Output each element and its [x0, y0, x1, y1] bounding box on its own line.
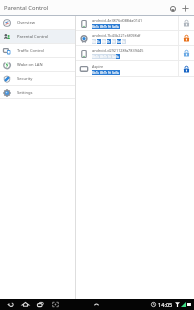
- staticText: Wed: [102, 40, 106, 44]
- staticText: Thu: [104, 71, 108, 75]
- staticText: Fri: [112, 40, 116, 44]
- staticText: Sun: [116, 71, 120, 75]
- button[interactable]: Sun: [122, 39, 126, 44]
- staticText: Thu: [104, 55, 108, 59]
- staticText: Wed: [100, 25, 104, 29]
- button[interactable]: Settings: [0, 86, 75, 99]
- button[interactable]: android-4e3876d088da0141: [76, 16, 194, 31]
- button[interactable]: Sat: [112, 70, 116, 75]
- button[interactable]: Overview: [0, 16, 75, 30]
- button[interactable]: Thu: [104, 24, 108, 29]
- staticText: Security: [17, 76, 33, 82]
- button[interactable]: Mon: [92, 39, 96, 44]
- button[interactable]: Wed: [100, 70, 104, 75]
- button[interactable]: Thu: [104, 70, 108, 75]
- button[interactable]: Expand: [89, 299, 103, 310]
- staticText: android-7b43b221c6f098df: [92, 33, 141, 38]
- staticText: Wed: [100, 71, 104, 75]
- button[interactable]: Sun: [116, 24, 120, 29]
- staticText: Mon: [92, 25, 96, 29]
- staticText: 14:05: [158, 301, 173, 309]
- button[interactable]: Aspire: [76, 61, 194, 77]
- button[interactable]: Wake on LAN: [0, 58, 75, 72]
- button[interactable]: Tue: [96, 70, 100, 75]
- staticText: Parental Control: [17, 34, 49, 40]
- staticText: Tue: [96, 55, 100, 59]
- staticText: android-4e3876d088da0141: [92, 18, 143, 23]
- button[interactable]: Fri: [108, 24, 112, 29]
- button[interactable]: Wed: [100, 24, 104, 29]
- staticText: Thu: [107, 40, 111, 44]
- staticText: Mon: [92, 55, 96, 59]
- button[interactable]: Sat: [112, 24, 116, 29]
- button[interactable]: Home: [18, 299, 32, 310]
- button[interactable]: Tue: [97, 39, 101, 44]
- button[interactable]: Sat: [117, 39, 121, 44]
- staticText: Wake on LAN: [17, 62, 43, 68]
- button[interactable]: Back: [3, 299, 17, 310]
- staticText: Tue: [96, 25, 100, 29]
- button[interactable]: Fri: [108, 54, 112, 59]
- staticText: android-d2921128fa7839445: [92, 48, 144, 53]
- staticText: Tue: [97, 40, 101, 44]
- button[interactable]: Parental Control: [0, 30, 75, 44]
- staticText: Mon: [92, 40, 96, 44]
- staticText: Thu: [104, 25, 108, 29]
- button[interactable]: Sun: [116, 54, 120, 59]
- button[interactable]: Toggle lock: [179, 31, 194, 46]
- button[interactable]: Wed: [102, 39, 106, 44]
- button[interactable]: Security: [0, 72, 75, 86]
- button[interactable]: android-7b43b221c6f098df: [76, 31, 194, 46]
- staticText: Sun: [122, 40, 126, 44]
- staticText: Sun: [116, 55, 120, 59]
- button[interactable]: Sat: [112, 54, 116, 59]
- button[interactable]: Refresh: [166, 2, 179, 15]
- button[interactable]: Fri: [112, 39, 116, 44]
- button[interactable]: Tue: [96, 24, 100, 29]
- staticText: Fri: [108, 25, 112, 29]
- button[interactable]: Wed: [100, 54, 104, 59]
- button[interactable]: Traffic Control: [0, 44, 75, 58]
- staticText: Wed: [100, 55, 104, 59]
- staticText: Fri: [108, 55, 112, 59]
- button[interactable]: Toggle lock: [179, 16, 194, 31]
- button[interactable]: Thu: [104, 54, 108, 59]
- button[interactable]: android-d2921128fa7839445: [76, 46, 194, 61]
- staticText: Sat: [117, 40, 121, 44]
- staticText: Tue: [96, 71, 100, 75]
- staticText: Fri: [108, 71, 112, 75]
- staticText: Sat: [112, 71, 116, 75]
- button[interactable]: Thu: [107, 39, 111, 44]
- button[interactable]: Toggle lock: [179, 46, 194, 61]
- button[interactable]: Mon: [92, 70, 96, 75]
- button[interactable]: Recent apps: [33, 299, 47, 310]
- staticText: Parental Control: [4, 4, 49, 12]
- button[interactable]: Add: [179, 2, 192, 15]
- button[interactable]: Mon: [92, 54, 96, 59]
- staticText: Sat: [112, 25, 116, 29]
- staticText: Aspire: [92, 64, 104, 69]
- button[interactable]: Mon: [92, 24, 96, 29]
- button[interactable]: Toggle lock: [179, 61, 194, 77]
- staticText: Sun: [116, 25, 120, 29]
- button[interactable]: Tue: [96, 54, 100, 59]
- staticText: Sat: [112, 55, 116, 59]
- button[interactable]: Screenshot: [48, 299, 62, 310]
- button[interactable]: Sun: [116, 70, 120, 75]
- staticText: Mon: [92, 71, 96, 75]
- button[interactable]: Fri: [108, 70, 112, 75]
- staticText: Settings: [17, 90, 33, 96]
- staticText: Overview: [17, 20, 35, 26]
- staticText: Traffic Control: [17, 48, 45, 54]
